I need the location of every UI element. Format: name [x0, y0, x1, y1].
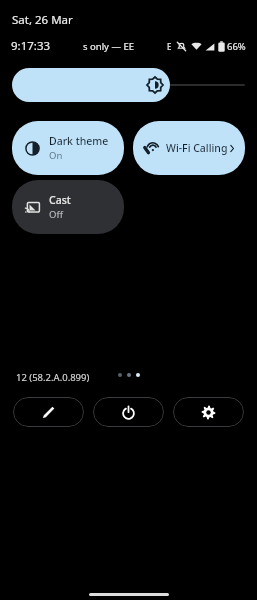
staticText: 9:17:33 — [11, 38, 51, 54]
staticText: On — [49, 149, 63, 162]
staticText: Wi-Fi Calling — [166, 141, 228, 155]
staticText: E — [167, 41, 172, 52]
button[interactable]: Settings — [173, 397, 244, 427]
button[interactable]: Wi-Fi Calling — [133, 121, 245, 175]
staticText: Cast — [49, 193, 71, 207]
button[interactable]: Brightness — [12, 68, 245, 102]
button[interactable]: Power — [93, 397, 164, 427]
button[interactable]: Cast — [12, 180, 124, 234]
button[interactable]: Dark theme — [12, 121, 124, 175]
staticText: s only — EE — [83, 40, 134, 53]
staticText: Off — [49, 208, 63, 221]
button[interactable]: Edit — [13, 397, 84, 427]
staticText: Dark theme — [49, 134, 109, 148]
staticText: Sat, 26 Mar — [12, 12, 73, 28]
staticText: 12 (58.2.A.0.899) — [16, 371, 90, 384]
staticText: 66% — [227, 40, 246, 53]
